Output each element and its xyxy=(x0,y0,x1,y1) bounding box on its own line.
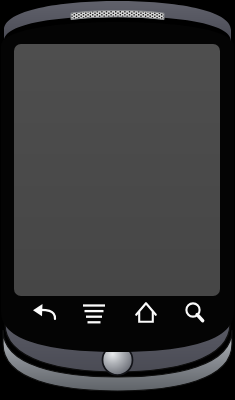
button[interactable]: Home xyxy=(125,299,167,329)
button[interactable]: Menu xyxy=(73,299,115,329)
button[interactable]: Trackball xyxy=(100,342,136,378)
button[interactable]: Search xyxy=(173,299,215,329)
button[interactable]: Back xyxy=(23,299,65,329)
